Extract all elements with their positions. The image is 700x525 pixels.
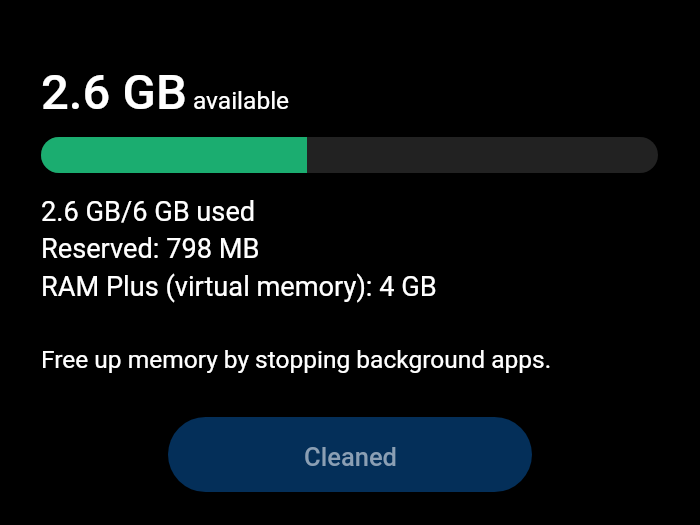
staticText: Cleaned [304, 442, 397, 472]
staticText: RAM Plus (virtual memory): 4 GB [41, 271, 437, 303]
staticText: 2.6 GB/6 GB used [41, 196, 256, 228]
other: Memory usage: 2.6 GB of 6 GB used [41, 137, 658, 173]
staticText: Free up memory by stopping background ap… [41, 345, 552, 374]
staticText: Reserved: 798 MB [41, 233, 260, 265]
button[interactable]: Cleaned [168, 417, 532, 492]
staticText: 2.6 GB available [41, 64, 290, 121]
